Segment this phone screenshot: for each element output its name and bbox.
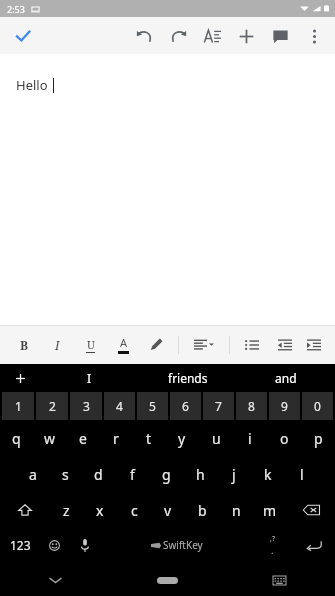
button[interactable]: o	[267, 420, 301, 456]
staticText: I	[55, 337, 60, 353]
button[interactable]: z	[49, 492, 83, 528]
staticText: i	[248, 429, 252, 448]
button[interactable]: 8	[236, 392, 267, 420]
staticText: 0	[314, 398, 321, 414]
button[interactable]: p	[301, 420, 335, 456]
staticText: m	[263, 501, 277, 520]
button[interactable]: s	[49, 456, 82, 492]
button[interactable]: Comment	[263, 19, 297, 53]
button[interactable]: Redo	[161, 19, 195, 53]
button[interactable]: f	[115, 456, 149, 492]
button[interactable]: a	[16, 456, 49, 492]
staticText: z	[63, 501, 70, 520]
staticText: U	[87, 337, 95, 352]
button[interactable]: u	[199, 420, 233, 456]
button[interactable]: v	[151, 492, 185, 528]
staticText: w	[44, 429, 56, 448]
button[interactable]: 1	[2, 392, 34, 420]
button[interactable]: More options	[297, 19, 331, 53]
staticText: k	[264, 465, 272, 484]
button[interactable]: Decrease indent	[268, 325, 301, 364]
button[interactable]: k	[251, 456, 285, 492]
button[interactable]: Italic	[41, 325, 74, 364]
button[interactable]: t	[132, 420, 165, 456]
button[interactable]: Bold	[8, 325, 41, 364]
button[interactable]: 7	[203, 392, 234, 420]
button[interactable]: 2	[36, 392, 68, 420]
button[interactable]: Punctuation	[252, 528, 292, 562]
button[interactable]: Alignment	[184, 325, 224, 364]
staticText: 6	[182, 398, 189, 414]
button[interactable]: Space	[101, 528, 252, 562]
button[interactable]: Hide keyboard	[0, 564, 111, 596]
staticText: 9	[281, 398, 288, 414]
button[interactable]: q	[0, 420, 33, 456]
button[interactable]: Increase indent	[301, 325, 327, 364]
button[interactable]: e	[66, 420, 99, 456]
button[interactable]: 6	[170, 392, 201, 420]
button[interactable]: Format	[195, 19, 229, 53]
staticText: f	[130, 465, 135, 484]
staticText: o	[280, 429, 289, 448]
staticText: 1	[15, 398, 22, 414]
button[interactable]: n	[219, 492, 253, 528]
button[interactable]: 4	[104, 392, 135, 420]
button[interactable]: 5	[137, 392, 168, 420]
button[interactable]: Enter	[292, 528, 335, 562]
staticText: p	[314, 429, 323, 448]
button[interactable]: Undo	[127, 19, 161, 53]
button[interactable]: Switch keyboard	[223, 564, 335, 596]
button[interactable]: Emoji	[40, 528, 69, 562]
button[interactable]: Text color	[107, 325, 140, 364]
staticText: s	[62, 465, 69, 484]
button[interactable]: y	[165, 420, 199, 456]
button[interactable]: friends	[139, 364, 237, 392]
button[interactable]: 9	[269, 392, 300, 420]
button[interactable]: d	[82, 456, 115, 492]
button[interactable]: Home	[111, 564, 223, 596]
button[interactable]: 0	[302, 392, 333, 420]
button[interactable]: l	[285, 456, 319, 492]
button[interactable]: Bulleted list	[235, 325, 268, 364]
button[interactable]: Done	[8, 21, 38, 51]
button[interactable]: I	[40, 364, 139, 392]
button[interactable]: 3	[70, 392, 102, 420]
staticText: 7	[215, 398, 222, 414]
button[interactable]: b	[185, 492, 219, 528]
button[interactable]: 123	[0, 528, 40, 562]
button[interactable]: Shift	[0, 492, 49, 528]
staticText: n	[232, 501, 241, 520]
button[interactable]: Highlight	[140, 325, 173, 364]
staticText: 2:53	[7, 3, 25, 15]
button[interactable]: c	[117, 492, 151, 528]
staticText: and	[275, 370, 297, 386]
button[interactable]: Underline	[74, 325, 107, 364]
button[interactable]: j	[217, 456, 251, 492]
staticText: .	[271, 544, 274, 556]
button[interactable]: x	[83, 492, 117, 528]
button[interactable]: r	[99, 420, 132, 456]
staticText: r	[113, 429, 119, 448]
staticText: friends	[168, 370, 208, 386]
button[interactable]: g	[149, 456, 183, 492]
button[interactable]: Add	[0, 364, 40, 392]
staticText: a	[29, 465, 37, 484]
staticText: b	[198, 501, 207, 520]
staticText: u	[212, 429, 221, 448]
button[interactable]: Insert	[229, 19, 263, 53]
staticText: 8	[248, 398, 255, 414]
staticText: SwiftKey	[163, 538, 203, 552]
staticText: A	[120, 335, 128, 350]
staticText: d	[94, 465, 103, 484]
button[interactable]: m	[253, 492, 287, 528]
staticText: j	[232, 465, 236, 484]
button[interactable]: Backspace	[287, 492, 335, 528]
button[interactable]: and	[237, 364, 335, 392]
staticText: 2	[49, 398, 56, 414]
staticText: x	[96, 501, 104, 520]
button[interactable]: i	[233, 420, 267, 456]
staticText: Hello	[16, 76, 48, 94]
button[interactable]: w	[33, 420, 66, 456]
button[interactable]: Voice input	[69, 528, 101, 562]
button[interactable]: h	[183, 456, 217, 492]
